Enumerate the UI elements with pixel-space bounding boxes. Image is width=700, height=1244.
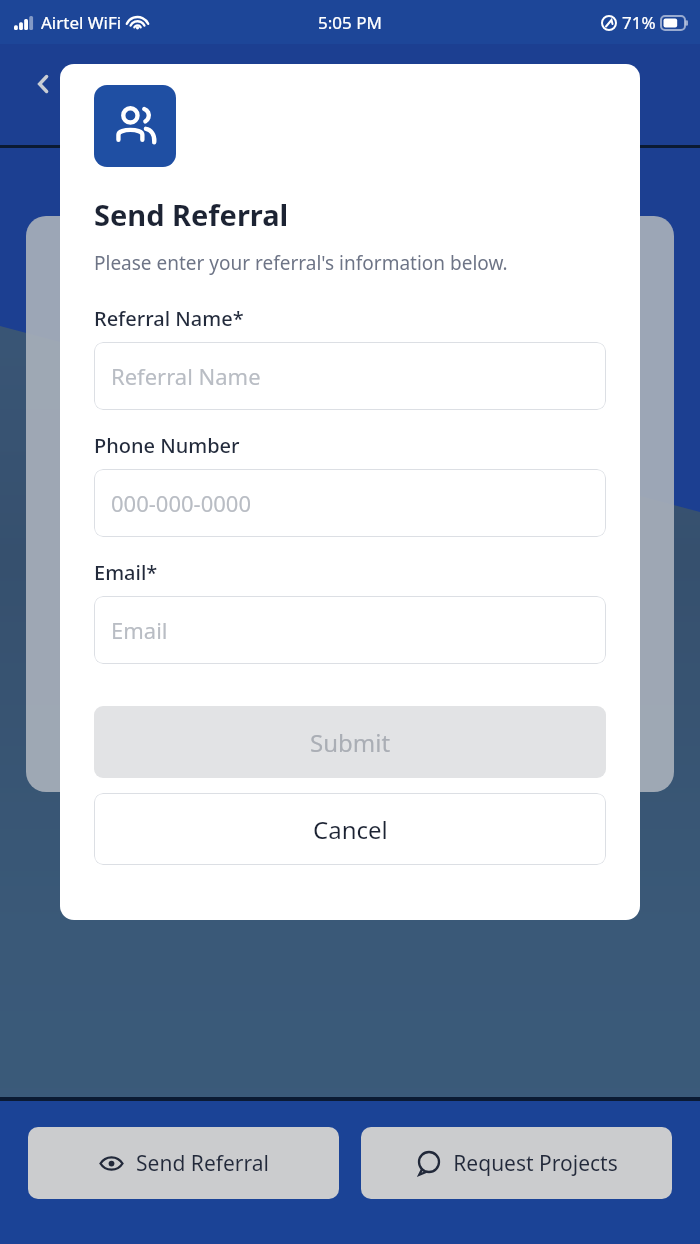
staticText: Referral Name <box>111 361 261 391</box>
staticText: Cancel <box>313 813 388 846</box>
button[interactable]: Email <box>94 596 606 664</box>
button[interactable]: Submit <box>94 706 606 778</box>
staticText: 000-000-0000 <box>111 488 252 518</box>
button[interactable]: 000-000-0000 <box>94 469 606 537</box>
button[interactable]: Referral Name <box>94 342 606 410</box>
staticText: Email <box>111 615 168 645</box>
staticText: Send Referral <box>136 1149 269 1178</box>
staticText: 71% <box>622 11 656 34</box>
button[interactable]: Send Referral <box>28 1127 339 1199</box>
staticText: 5:05 PM <box>318 11 382 34</box>
staticText: Please enter your referral's information… <box>94 250 508 276</box>
staticText: Submit <box>310 726 391 759</box>
staticText: Request Projects <box>453 1149 618 1178</box>
staticText: Airtel WiFi <box>41 11 122 34</box>
button[interactable]: Cancel <box>94 793 606 865</box>
button[interactable]: Back <box>22 62 66 106</box>
staticText: Phone Number <box>94 432 240 459</box>
button[interactable]: Request Projects <box>361 1127 672 1199</box>
staticText: Referral Name* <box>94 305 244 332</box>
staticText: Email* <box>94 559 158 586</box>
staticText: Send Referral <box>94 195 289 234</box>
